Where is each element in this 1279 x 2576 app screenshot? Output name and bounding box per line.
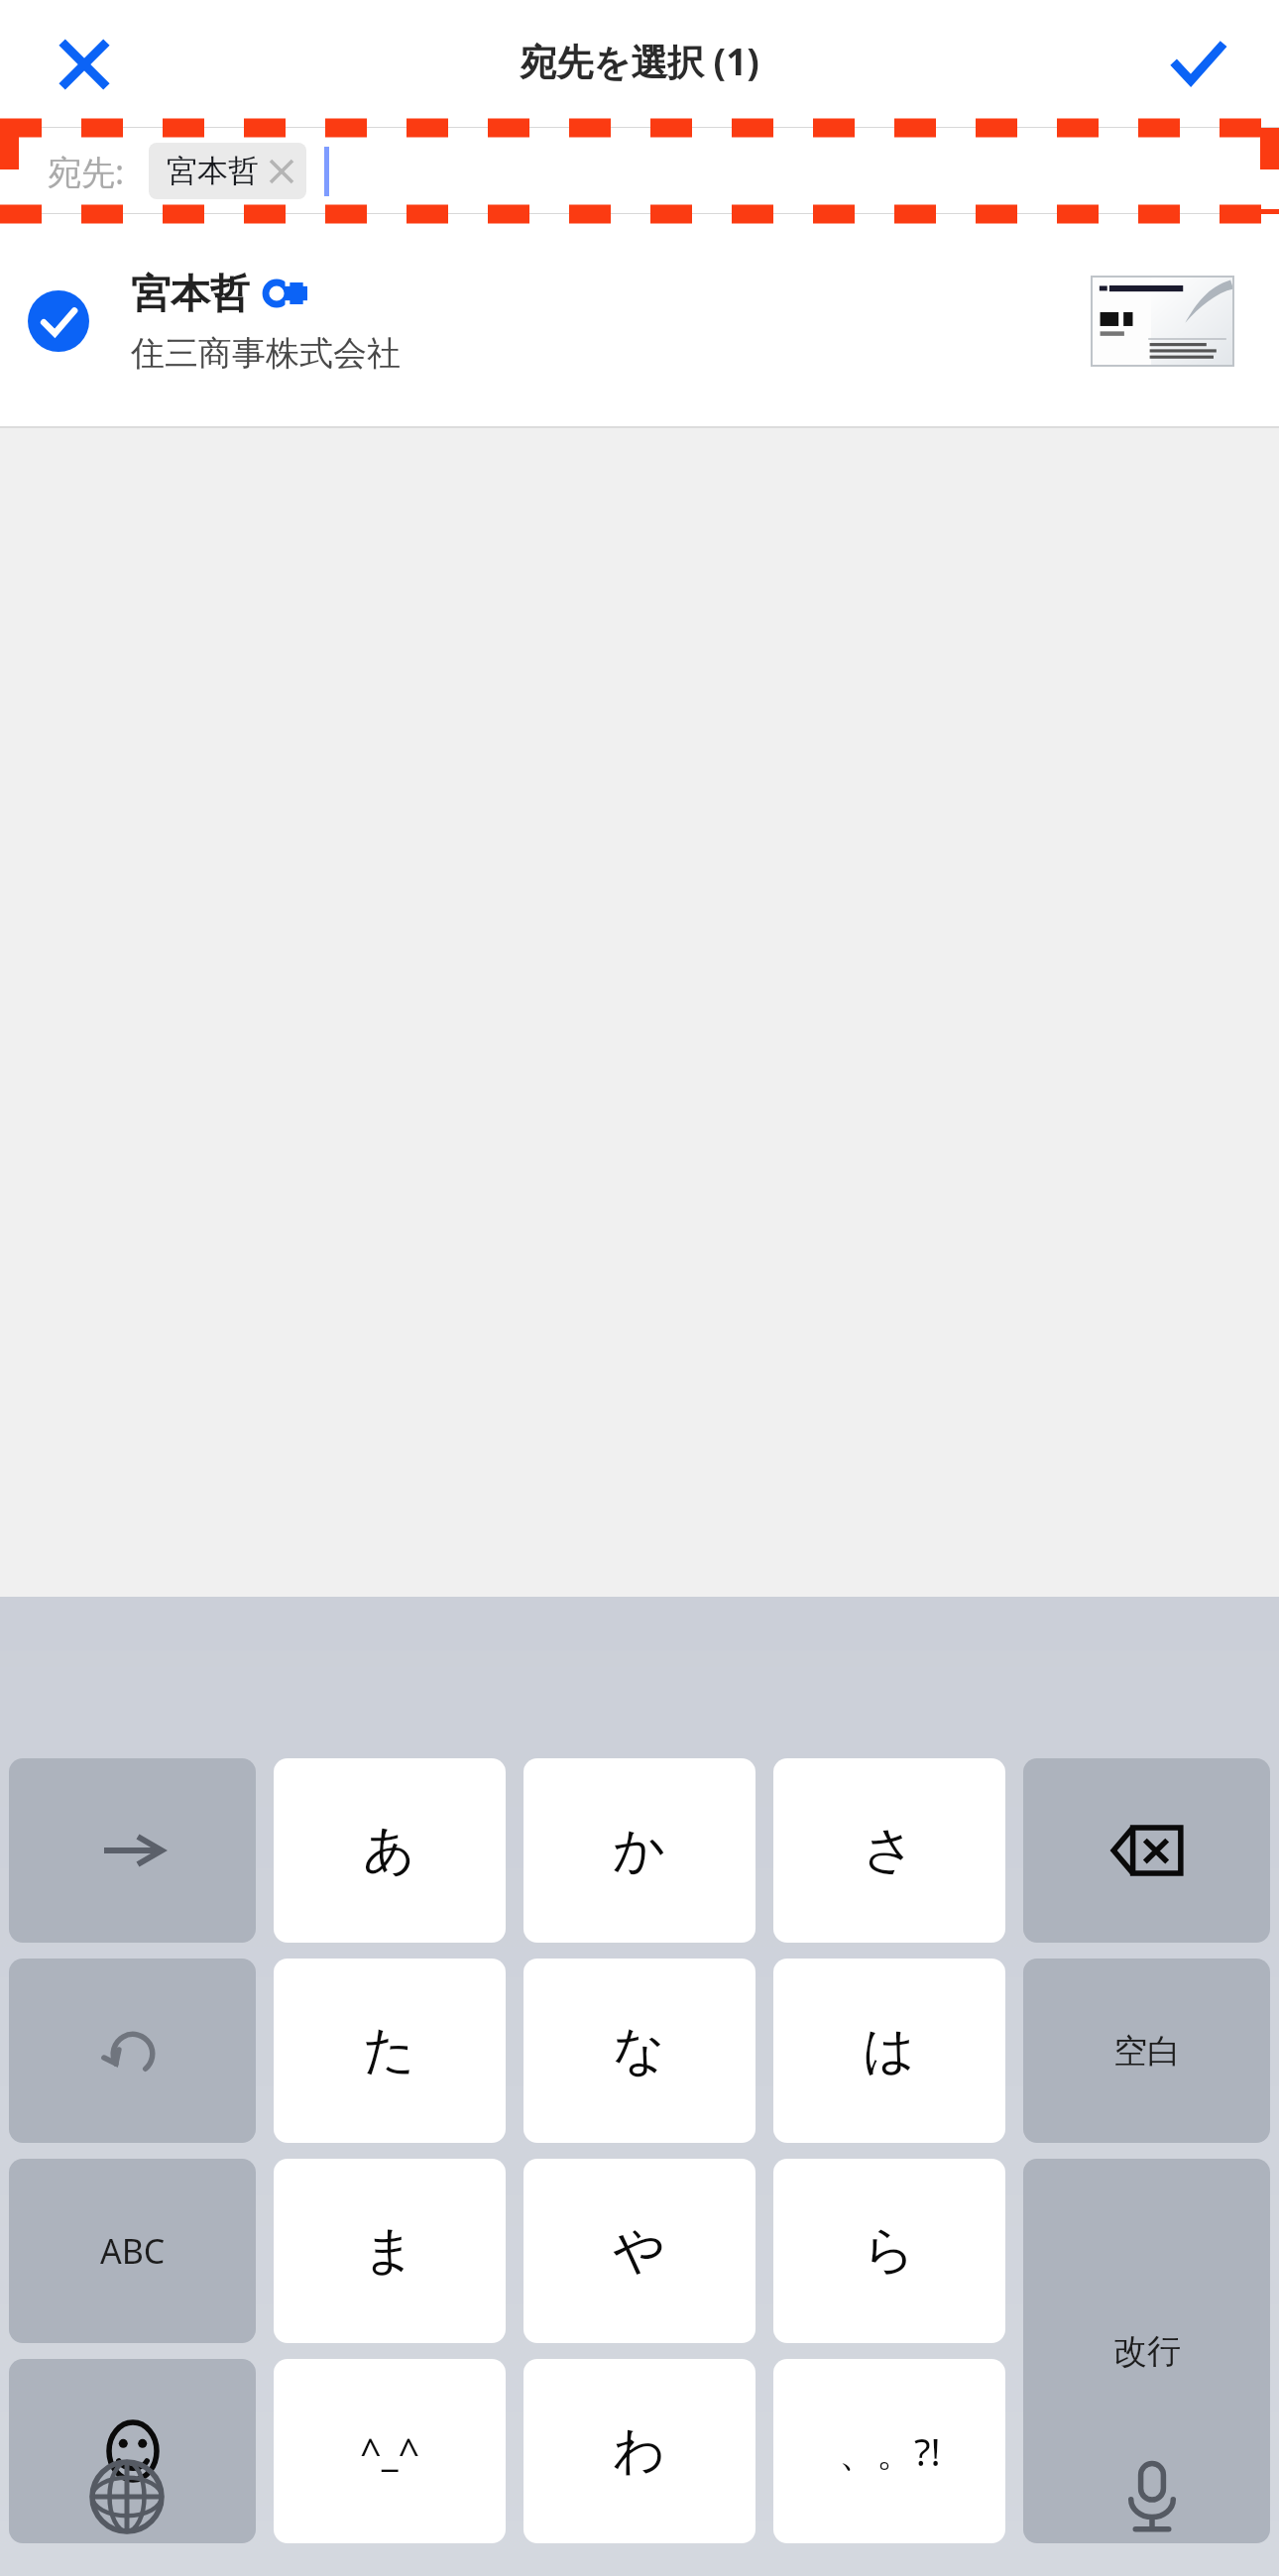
staticText: さ: [863, 1818, 916, 1883]
staticText: な: [613, 2018, 666, 2083]
button[interactable]: は: [773, 1959, 1005, 2143]
button[interactable]: ま: [274, 2159, 506, 2343]
button[interactable]: 音声入力: [1083, 2442, 1221, 2551]
staticText: か: [613, 1818, 666, 1883]
staticText: や: [613, 2218, 666, 2284]
button[interactable]: 次候補: [9, 1758, 256, 1943]
button[interactable]: 空白: [1023, 1959, 1270, 2143]
button[interactable]: 宮本哲: [0, 214, 1279, 428]
button[interactable]: か: [523, 1758, 756, 1943]
staticText: あ: [363, 1818, 416, 1883]
staticText: わ: [613, 2418, 666, 2484]
staticText: 宛先:: [48, 149, 125, 194]
button[interactable]: 絵文字: [9, 2359, 256, 2543]
staticText: 改行: [1113, 2330, 1181, 2373]
button[interactable]: ら: [773, 2159, 1005, 2343]
staticText: 空白: [1113, 2030, 1181, 2072]
button[interactable]: わ: [523, 2359, 756, 2543]
staticText: 住三商事株式会社: [131, 332, 401, 375]
staticText: 宮本哲: [167, 152, 259, 190]
button[interactable]: あ: [274, 1758, 506, 1943]
button[interactable]: 言語を切り替え: [58, 2442, 196, 2551]
button[interactable]: 閉じる: [25, 10, 144, 119]
staticText: ら: [863, 2218, 916, 2284]
button[interactable]: 宮本哲: [149, 143, 306, 199]
button[interactable]: 決定: [1138, 10, 1257, 119]
button[interactable]: ABC: [9, 2159, 256, 2343]
staticText: ^_^: [360, 2425, 420, 2477]
staticText: ま: [363, 2218, 416, 2284]
button[interactable]: 戻す: [9, 1959, 256, 2143]
button[interactable]: 、。?!: [773, 2359, 1005, 2543]
staticText: ABC: [100, 2228, 166, 2274]
button[interactable]: 宛先:: [0, 128, 1279, 214]
button[interactable]: や: [523, 2159, 756, 2343]
button[interactable]: 改行: [1023, 2159, 1270, 2543]
button[interactable]: ^_^: [274, 2359, 506, 2543]
staticText: は: [863, 2018, 916, 2083]
button[interactable]: た: [274, 1959, 506, 2143]
button[interactable]: 削除: [1023, 1758, 1270, 1943]
staticText: た: [363, 2018, 416, 2083]
staticText: 、。?!: [839, 2425, 941, 2477]
staticText: 宛先を選択 (1): [520, 36, 759, 86]
button[interactable]: さ: [773, 1758, 1005, 1943]
staticText: 宮本哲: [131, 269, 250, 318]
button[interactable]: な: [523, 1959, 756, 2143]
